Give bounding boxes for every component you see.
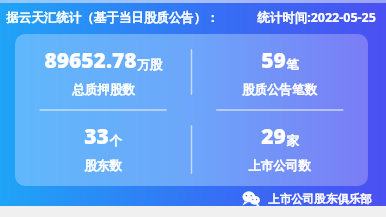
button[interactable]: WeChat — [0, 191, 372, 206]
button[interactable]: 29 — [191, 110, 368, 186]
staticText: 股质公告笔数 — [242, 82, 317, 98]
staticText: 29 — [261, 122, 286, 151]
button[interactable]: 89652.78 — [15, 34, 191, 110]
staticText: 万股 — [137, 57, 162, 73]
button[interactable]: 59 — [191, 34, 368, 110]
staticText: 笔 — [286, 57, 299, 73]
staticText: 59 — [261, 46, 286, 75]
staticText: 统计时间:2022-05-25 — [257, 9, 376, 26]
button[interactable]: 89652.78 — [15, 34, 368, 186]
other: WeChat — [242, 191, 261, 206]
staticText: 总质押股数 — [72, 82, 135, 98]
staticText: 家 — [286, 133, 299, 149]
staticText: 据云天汇统计（基于当日股质公告）： — [6, 10, 219, 26]
staticText: 股东数 — [84, 158, 122, 174]
button[interactable]: 33 — [15, 110, 191, 186]
staticText: 个 — [109, 133, 122, 149]
staticText: 上市公司数 — [248, 158, 311, 174]
staticText: 33 — [84, 122, 109, 151]
staticText: 89652.78 — [44, 46, 137, 75]
staticText: 上市公司股东俱乐部 — [268, 192, 372, 206]
